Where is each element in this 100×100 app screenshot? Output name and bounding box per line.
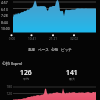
staticText: 平均 bbox=[23, 77, 29, 81]
staticText: 4:57 bbox=[1, 0, 12, 5]
staticText: 0:00 bbox=[5, 37, 19, 41]
staticText: 126 bbox=[20, 68, 32, 77]
staticText: 32:02 bbox=[67, 37, 81, 41]
staticText: 10:00 bbox=[1, 26, 12, 31]
staticText: 180 bbox=[2, 85, 12, 89]
button[interactable]: 高度 bbox=[27, 47, 37, 54]
staticText: 10:41 bbox=[25, 37, 39, 41]
button[interactable]: 心拍 bbox=[50, 47, 60, 54]
staticText: 120 bbox=[2, 92, 12, 96]
staticText: 7:28 bbox=[1, 13, 12, 18]
staticText: 高度 bbox=[28, 48, 36, 53]
staticText: 141 bbox=[66, 68, 78, 77]
staticText: ペース bbox=[38, 48, 49, 53]
staticText: ピッチ bbox=[61, 48, 73, 53]
button[interactable]: ペース bbox=[37, 47, 50, 54]
staticText: 心拍 bbox=[51, 48, 59, 53]
staticText: 8:44 bbox=[1, 20, 12, 25]
button[interactable]: ピッチ bbox=[60, 47, 74, 54]
staticText: 最大 bbox=[69, 77, 75, 81]
staticText: 心拍 (bpm) bbox=[2, 61, 23, 66]
staticText: 6:13 bbox=[1, 7, 12, 12]
staticText: 21:21 bbox=[46, 37, 60, 41]
